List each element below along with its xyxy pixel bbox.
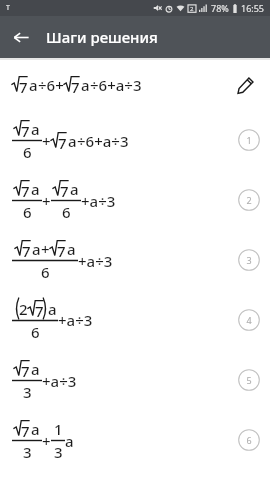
staticText: 7 (60, 181, 69, 201)
button[interactable]: 7 (0, 410, 270, 470)
button[interactable]: 2 (0, 290, 270, 350)
staticText: 7 (57, 241, 66, 261)
button[interactable]: 7 (0, 230, 270, 290)
staticText: 16:55 (241, 2, 265, 14)
staticText: 78% (211, 2, 229, 14)
staticText: a (68, 131, 77, 151)
button[interactable]: Back (0, 16, 42, 58)
staticText: a (31, 179, 40, 199)
staticText: 6 (23, 202, 32, 222)
staticText: 5 (246, 374, 252, 386)
staticText: 6 (246, 434, 252, 446)
staticText: + (42, 431, 51, 451)
staticText: 7 (35, 301, 44, 321)
staticText: +a÷3 (81, 191, 116, 211)
staticText: a (31, 359, 40, 379)
staticText: 1 (246, 134, 252, 146)
button[interactable]: 7 (0, 350, 270, 410)
staticText: + (42, 131, 51, 151)
staticText: +a÷3 (42, 371, 77, 391)
staticText: a (70, 179, 79, 199)
staticText: a (31, 119, 40, 139)
staticText: 4 (246, 314, 252, 326)
staticText: 7 (22, 241, 31, 261)
staticText: ÷6+a÷3 (77, 131, 129, 151)
staticText: +a÷3 (78, 251, 113, 271)
staticText: 3 (246, 254, 252, 266)
staticText: 6 (41, 262, 50, 282)
staticText: Шаги решения (46, 27, 158, 47)
staticText: a (67, 239, 76, 259)
staticText: 6 (23, 142, 32, 162)
staticText: a (65, 431, 74, 451)
staticText: a (29, 75, 38, 95)
staticText: 2 (19, 299, 28, 319)
staticText: ÷6+ (38, 75, 64, 95)
staticText: 6 (31, 322, 40, 342)
staticText: 7 (21, 361, 30, 381)
staticText: 7 (21, 181, 30, 201)
button[interactable]: Edit expression (228, 68, 262, 102)
staticText: 3 (54, 442, 63, 462)
button[interactable]: 7 (0, 110, 270, 170)
staticText: 7 (21, 121, 30, 141)
staticText: +a÷3 (58, 310, 93, 330)
staticText: 6 (62, 202, 71, 222)
staticText: 7 (21, 421, 30, 441)
staticText: ÷6+a÷3 (90, 75, 142, 95)
staticText: a (48, 299, 57, 319)
staticText: 7 (58, 133, 67, 153)
staticText: 7 (71, 77, 80, 97)
staticText: a (81, 75, 90, 95)
staticText: a (31, 419, 40, 439)
staticText: 2 (246, 194, 252, 206)
staticText: + (41, 239, 50, 259)
staticText: 3 (23, 382, 32, 402)
staticText: 2 (190, 5, 194, 13)
staticText: + (42, 191, 51, 211)
button[interactable]: 7 (0, 170, 270, 230)
staticText: T (6, 3, 10, 13)
staticText: 7 (19, 77, 28, 97)
staticText: 3 (23, 442, 32, 462)
staticText: 1 (54, 419, 63, 439)
staticText: a (32, 239, 41, 259)
